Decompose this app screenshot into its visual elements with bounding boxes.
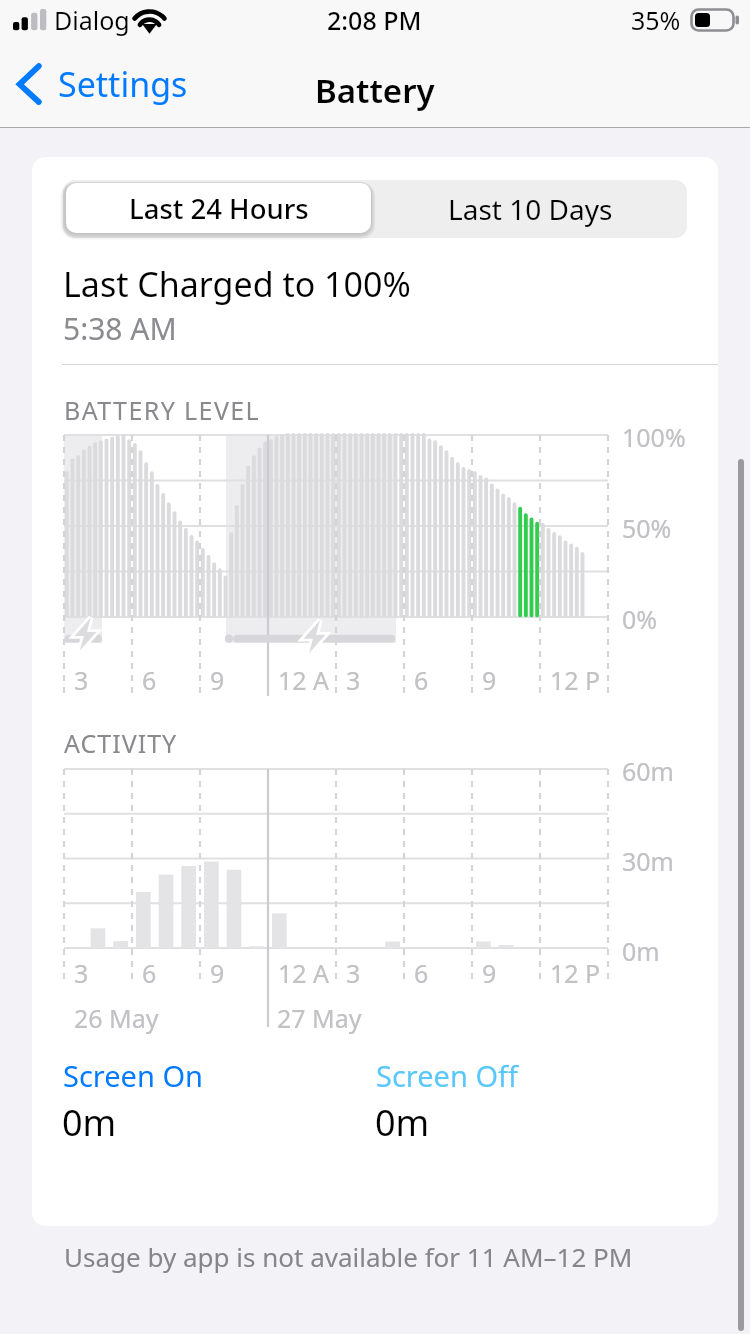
staticText: 6 xyxy=(142,663,157,697)
staticText: 9 xyxy=(210,663,225,697)
staticText: 12 P xyxy=(550,956,601,990)
staticText: 5:38 AM xyxy=(63,308,177,349)
staticText: 3 xyxy=(74,956,89,990)
staticText: Last 24 Hours xyxy=(129,190,309,227)
staticText: Screen Off xyxy=(376,1056,519,1095)
staticText: 30m xyxy=(622,844,674,878)
staticText: Battery xyxy=(315,68,435,113)
staticText: Last 10 Days xyxy=(448,190,613,228)
staticText: 0m xyxy=(375,1098,430,1147)
staticText: 12 A xyxy=(278,663,330,697)
staticText: 12 A xyxy=(278,956,330,990)
staticText: Settings xyxy=(58,61,188,107)
staticText: BATTERY LEVEL xyxy=(64,393,261,427)
staticText: 100% xyxy=(622,420,686,454)
button[interactable]: Settings xyxy=(8,52,198,128)
staticText: 6 xyxy=(414,956,429,990)
staticText: 0m xyxy=(62,1098,117,1147)
staticText: 0m xyxy=(622,934,660,968)
staticText: Screen On xyxy=(63,1056,203,1095)
staticText: Dialog xyxy=(54,3,130,37)
staticText: Last Charged to 100% xyxy=(63,261,411,307)
staticText: 3 xyxy=(346,956,361,990)
staticText: 9 xyxy=(482,956,497,990)
staticText: 3 xyxy=(346,663,361,697)
staticText: 0% xyxy=(622,602,658,636)
staticText: 26 May xyxy=(74,1001,159,1035)
staticText: ACTIVITY xyxy=(64,726,178,760)
staticText: 60m xyxy=(622,754,674,788)
staticText: 9 xyxy=(482,663,497,697)
button[interactable]: Last 10 Days xyxy=(373,180,687,238)
staticText: 50% xyxy=(622,511,672,545)
staticText: 35% xyxy=(631,3,681,37)
staticText: 6 xyxy=(414,663,429,697)
staticText: Usage by app is not available for 11 AM–… xyxy=(64,1239,633,1274)
button[interactable]: Last 24 Hours xyxy=(66,183,371,233)
staticText: 3 xyxy=(74,663,89,697)
staticText: 12 P xyxy=(550,663,601,697)
staticText: 6 xyxy=(142,956,157,990)
staticText: 2:08 PM xyxy=(327,3,422,37)
staticText: 27 May xyxy=(277,1001,362,1035)
staticText: 9 xyxy=(210,956,225,990)
